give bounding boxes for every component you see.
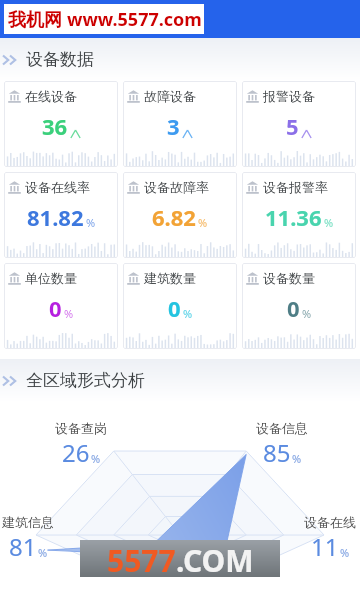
staticText: 26 [62,436,90,469]
staticText: % [324,215,334,230]
staticText: 6.82 [152,202,196,232]
button[interactable]: 在线设备 [4,81,118,167]
staticText: 设备数据 [26,49,94,70]
staticText: 5 [286,111,299,141]
staticText: 报警设备 [263,88,315,104]
staticText: 故障设备 [144,88,196,104]
staticText: % [91,451,101,466]
staticText: 11 [311,530,339,563]
staticText: 设备在线率 [25,179,90,195]
staticText: 85 [263,436,291,469]
staticText: 在线设备 [25,88,77,104]
staticText: % [38,545,48,560]
staticText: 11.36 [265,202,322,232]
staticText: 单位数量 [25,270,77,286]
staticText: 设备在线 [304,514,356,530]
button[interactable]: 设备数量 [242,263,356,349]
button[interactable]: Section marker [0,359,360,402]
button[interactable]: 单位数量 [4,263,118,349]
button[interactable]: 设备报警率 [242,172,356,258]
staticText: 0 [287,293,300,323]
staticText: 5577 [107,540,176,577]
staticText: 设备故障率 [144,179,209,195]
button[interactable]: 报警设备 [242,81,356,167]
button[interactable]: Section marker [0,38,360,81]
staticText: 建筑信息 [2,514,54,530]
staticText: 我机网 [8,7,67,32]
staticText: % [64,306,74,321]
staticText: % [302,306,312,321]
staticText: 设备数量 [263,270,315,286]
staticText: 设备报警率 [263,179,328,195]
staticText: 全区域形式分析 [26,370,145,391]
staticText: % [183,306,193,321]
staticText: 设备查岗 [55,420,107,436]
button[interactable]: 故障设备 [123,81,237,167]
staticText: 3 [167,111,180,141]
other: Section marker [2,373,22,389]
staticText: % [292,451,302,466]
staticText: 建筑数量 [144,270,196,286]
staticText: 0 [168,293,181,323]
staticText: % [198,215,208,230]
button[interactable]: 建筑数量 [123,263,237,349]
staticText: % [86,215,96,230]
staticText: 81.82 [27,202,84,232]
staticText: .COM [176,540,254,577]
staticText: % [340,545,350,560]
staticText: 81 [9,530,37,563]
other: Section marker [2,52,22,68]
button[interactable]: 设备在线率 [4,172,118,258]
staticText: 0 [49,293,62,323]
staticText: 设备信息 [256,420,308,436]
button[interactable]: 设备故障率 [123,172,237,258]
staticText: 36 [42,111,68,141]
staticText: www.5577.com [67,7,202,32]
